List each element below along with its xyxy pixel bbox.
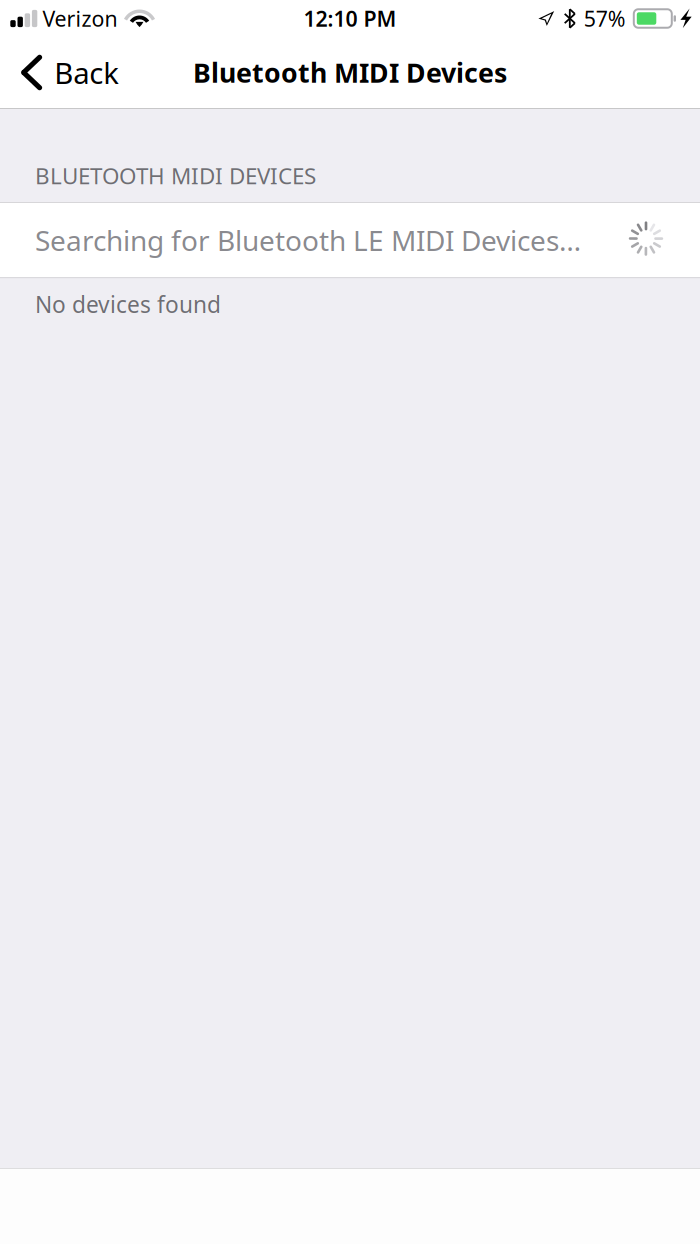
staticText: No devices found <box>35 289 221 319</box>
button[interactable]: Back <box>0 37 160 108</box>
staticText: Searching for Bluetooth LE MIDI Devices… <box>35 221 581 259</box>
staticText: 57% <box>584 4 626 33</box>
staticText: 12:10 PM <box>303 4 396 33</box>
button[interactable]: Searching for Bluetooth LE MIDI Devices… <box>0 203 700 277</box>
staticText: BLUETOOTH MIDI DEVICES <box>35 160 316 191</box>
staticText: Back <box>54 53 119 92</box>
staticText: Bluetooth MIDI Devices <box>193 55 507 90</box>
staticText: Verizon <box>43 4 118 33</box>
